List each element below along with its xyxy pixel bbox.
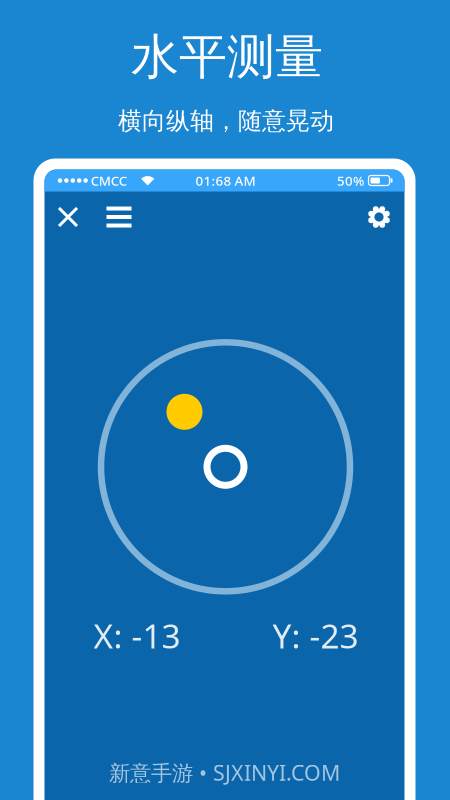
staticText: CMCC <box>91 172 127 189</box>
button[interactable]: Close <box>47 196 89 238</box>
staticText: 水平测量 <box>131 27 323 86</box>
staticText: 横向纵轴，随意晃动 <box>118 106 334 136</box>
button[interactable]: Menu <box>98 196 140 238</box>
staticText: 01:68 AM <box>195 172 255 189</box>
staticText: 新意手游 • SJXINYI.COM <box>109 758 340 787</box>
staticText: X: -13 <box>93 613 180 658</box>
staticText: Y: -23 <box>272 613 358 658</box>
staticText: 50% <box>337 172 364 189</box>
button[interactable]: Settings <box>358 196 400 238</box>
